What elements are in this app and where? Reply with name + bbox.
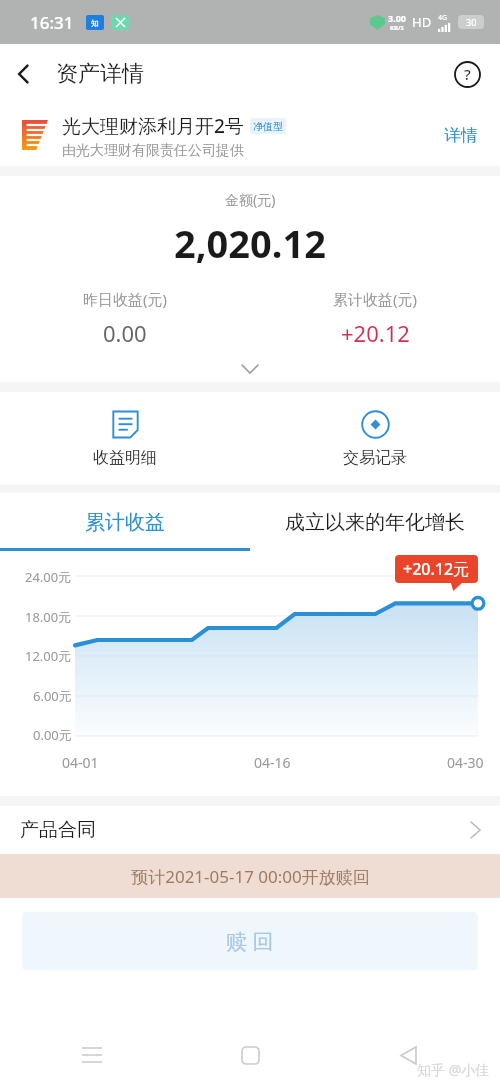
button[interactable]: 赎 回 [22, 912, 478, 970]
staticText: 由光大理财有限责任公司提供 [62, 142, 244, 160]
staticText: 光大理财添利月开2号 [62, 113, 244, 139]
button[interactable]: Recent apps [70, 1033, 114, 1077]
staticText: 04-16 [254, 753, 291, 772]
button[interactable]: 累计收益 [0, 493, 250, 551]
staticText: 金额(元) [225, 190, 276, 209]
staticText: 收益明细 [93, 448, 157, 468]
staticText: 累计收益 [85, 510, 165, 535]
staticText: 净值型 [253, 120, 283, 133]
staticText: +20.12元 [403, 558, 470, 580]
staticText: 0.00 [103, 318, 147, 348]
staticText: 6.00元 [33, 687, 72, 705]
staticText: 16:31 [30, 11, 74, 34]
staticText: 知 [91, 18, 99, 28]
button[interactable]: Home [228, 1033, 272, 1077]
button[interactable]: 详情 [436, 117, 486, 154]
staticText: HD [412, 13, 432, 31]
button[interactable]: Back [0, 50, 48, 98]
staticText: 详情 [444, 125, 478, 146]
staticText: 成立以来的年化增长 [285, 510, 465, 535]
staticText: ? [464, 64, 471, 84]
staticText: 昨日收益(元) [83, 289, 168, 309]
staticText: 产品合同 [20, 818, 96, 842]
staticText: 12.00元 [25, 647, 72, 665]
staticText: 30 [466, 16, 477, 28]
button[interactable]: Expand [230, 360, 270, 378]
staticText: 3.00 [388, 12, 406, 24]
staticText: 赎 回 [226, 927, 274, 956]
staticText: 04-30 [447, 753, 484, 772]
button[interactable]: 交易记录 [250, 392, 500, 485]
button[interactable]: 产品合同 [0, 806, 500, 854]
staticText: 0.00元 [33, 726, 72, 744]
staticText: 交易记录 [343, 448, 407, 468]
staticText: 知乎 @小佳 [417, 1060, 490, 1079]
staticText: 累计收益(元) [333, 289, 418, 309]
button[interactable]: 收益明细 [0, 392, 250, 485]
staticText: 4G [438, 13, 448, 23]
staticText: 24.00元 [25, 568, 72, 586]
staticText: 2,020.12 [174, 217, 326, 269]
staticText: 预计2021-05-17 00:00开放赎回 [131, 865, 370, 888]
staticText: 04-01 [62, 753, 99, 772]
button[interactable]: Back [386, 1033, 430, 1077]
button[interactable]: Help [444, 51, 490, 97]
staticText: 18.00元 [25, 608, 72, 626]
staticText: KB/S [390, 24, 404, 32]
staticText: 资产详情 [56, 60, 144, 88]
staticText: +20.12 [341, 318, 410, 348]
button[interactable]: 成立以来的年化增长 [250, 493, 500, 551]
